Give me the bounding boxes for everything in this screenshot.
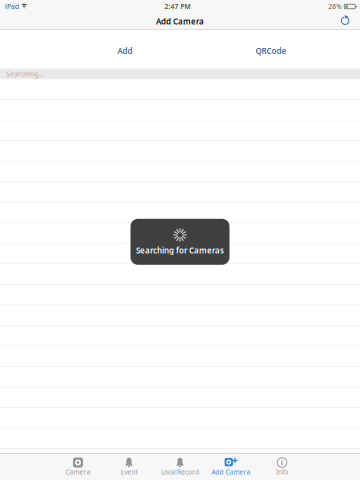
button[interactable]: Event: [103, 453, 154, 479]
staticText: Camera: [65, 468, 90, 476]
staticText: Add Camera: [211, 468, 250, 476]
staticText: QRCode: [255, 46, 286, 56]
staticText: Searching...: [6, 69, 44, 78]
staticText: Searching for Cameras: [136, 245, 224, 256]
staticText: Add: [117, 46, 132, 56]
staticText: iPad: [5, 2, 19, 11]
button[interactable]: Add: [92, 39, 158, 63]
staticText: 26%: [328, 2, 342, 11]
button[interactable]: LocalRecord: [154, 453, 205, 479]
staticText: LocalRecord: [161, 468, 199, 476]
staticText: 2:47 PM: [165, 2, 191, 11]
button[interactable]: Refresh: [334, 13, 360, 30]
button[interactable]: QRCode: [238, 39, 304, 63]
staticText: Add Camera: [156, 16, 204, 27]
button[interactable]: Camera: [52, 453, 103, 479]
button[interactable]: Add Camera: [205, 453, 256, 479]
staticText: Info: [276, 468, 288, 476]
staticText: Event: [120, 468, 137, 476]
button[interactable]: Info: [256, 453, 307, 479]
